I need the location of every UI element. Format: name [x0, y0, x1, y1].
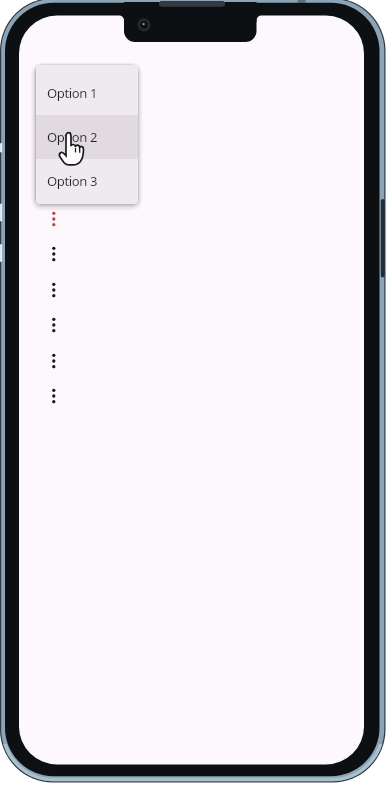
staticText: Option 1 — [47, 84, 98, 102]
button[interactable] — [40, 276, 68, 304]
button[interactable] — [40, 382, 68, 410]
button[interactable] — [40, 347, 68, 375]
staticText: Option 2 — [47, 128, 98, 146]
staticText: Option 3 — [47, 172, 98, 190]
button[interactable]: Option 1 — [36, 71, 138, 115]
button[interactable] — [40, 240, 68, 268]
button[interactable]: Option 2 — [36, 115, 138, 159]
button[interactable] — [40, 311, 68, 339]
button[interactable] — [40, 205, 68, 233]
button[interactable]: Option 3 — [36, 159, 138, 203]
